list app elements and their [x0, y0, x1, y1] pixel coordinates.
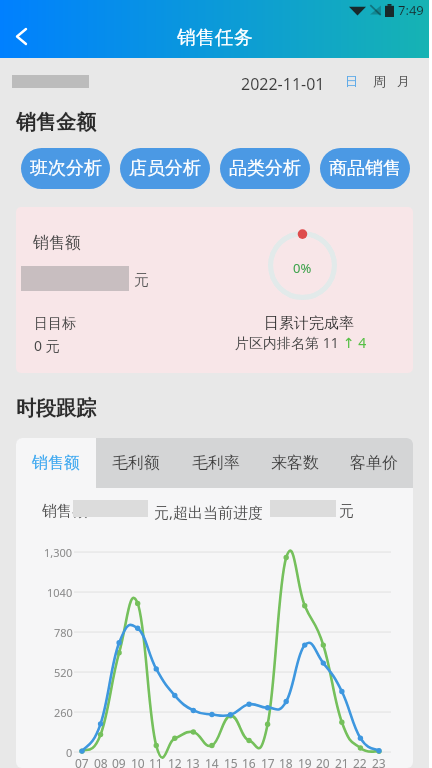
staticText: 毛利额: [112, 453, 160, 473]
button[interactable]: 月: [391, 68, 415, 94]
button[interactable]: 班次分析: [21, 148, 110, 189]
button[interactable]: 毛利额: [96, 438, 176, 488]
staticText: 12: [168, 755, 182, 768]
staticText: 07: [75, 755, 89, 768]
button[interactable]: Back: [4, 23, 38, 49]
staticText: 21: [335, 755, 349, 768]
staticText: 11: [149, 755, 163, 768]
staticText: 23: [372, 755, 386, 768]
staticText: 08: [94, 755, 108, 768]
staticText: 周: [373, 73, 386, 89]
button[interactable]: 销售额: [16, 438, 96, 488]
staticText: 13: [186, 755, 200, 768]
staticText: 14: [205, 755, 219, 768]
staticText: 来客数: [271, 453, 319, 473]
staticText: 2022-11-01: [241, 73, 325, 95]
staticText: 17: [261, 755, 275, 768]
staticText: 7:49: [398, 1, 424, 19]
staticText: 商品销售: [329, 157, 401, 180]
staticText: 260: [54, 705, 73, 720]
staticText: 日累计完成率: [264, 314, 354, 333]
staticText: 元,超出当前进度: [154, 502, 264, 522]
staticText: 销售额: [32, 453, 80, 473]
staticText: 销售额: [42, 502, 87, 521]
button[interactable]: 客单价: [334, 438, 413, 488]
button[interactable]: 周: [367, 68, 391, 94]
staticText: 15: [224, 755, 238, 768]
staticText: 20: [316, 755, 330, 768]
staticText: 月: [397, 73, 410, 89]
button[interactable]: 毛利率: [176, 438, 255, 488]
staticText: 店员分析: [129, 157, 201, 180]
staticText: 元: [339, 502, 354, 521]
staticText: 10: [131, 755, 145, 768]
button[interactable]: 店员分析: [120, 148, 210, 189]
staticText: 日目标: [34, 315, 76, 333]
staticText: 时段跟踪: [16, 396, 96, 421]
staticText: 班次分析: [30, 157, 102, 180]
button[interactable]: 日: [339, 68, 363, 94]
staticText: 毛利率: [192, 453, 240, 473]
staticText: 1040: [47, 585, 73, 600]
staticText: ↑ 4: [343, 333, 367, 352]
staticText: 片区内排名第 11: [235, 333, 343, 352]
button[interactable]: 品类分析: [220, 148, 310, 189]
staticText: 09: [112, 755, 126, 768]
staticText: 0%: [293, 259, 312, 277]
staticText: 品类分析: [229, 157, 301, 180]
staticText: 780: [54, 625, 73, 640]
staticText: 19: [298, 755, 312, 768]
staticText: 日: [345, 73, 358, 89]
staticText: 22: [353, 755, 367, 768]
button[interactable]: 商品销售: [320, 148, 410, 189]
staticText: 1,300: [44, 545, 73, 560]
staticText: 销售额: [33, 233, 81, 253]
staticText: 520: [54, 665, 73, 680]
staticText: 销售任务: [177, 26, 253, 50]
staticText: 0: [66, 745, 73, 760]
staticText: 元: [134, 271, 149, 290]
staticText: 18: [279, 755, 293, 768]
staticText: 0 元: [34, 336, 60, 355]
staticText: 客单价: [350, 453, 398, 473]
button[interactable]: 来客数: [255, 438, 334, 488]
staticText: 销售金额: [16, 110, 96, 135]
staticText: 16: [242, 755, 256, 768]
